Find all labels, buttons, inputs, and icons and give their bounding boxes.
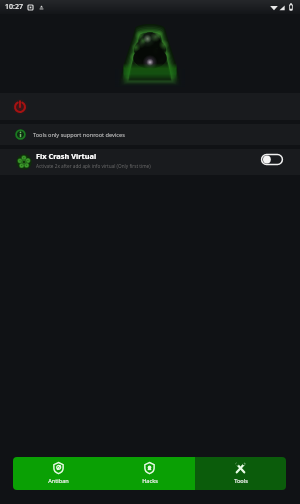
staticText: 10:27	[5, 2, 23, 12]
staticText: Tools	[234, 477, 248, 485]
staticText: Antiban	[48, 477, 69, 485]
staticText: Fix Crash Virtual	[36, 151, 97, 161]
staticText: Tools only support nonroot devices	[33, 131, 125, 139]
button[interactable]: Tools	[195, 457, 286, 490]
staticText: Activate 2x after add apk info virtual (…	[36, 163, 151, 169]
button[interactable]: Power	[0, 93, 300, 120]
button[interactable]: Antiban	[13, 457, 104, 490]
button[interactable]: Fix Crash Virtual toggle	[261, 154, 283, 165]
button[interactable]: Hacks	[104, 457, 195, 490]
staticText: Hacks	[142, 477, 158, 485]
button[interactable]: Fix Crash Virtual	[0, 149, 300, 175]
button[interactable]: Tools only support nonroot devices	[0, 124, 300, 145]
